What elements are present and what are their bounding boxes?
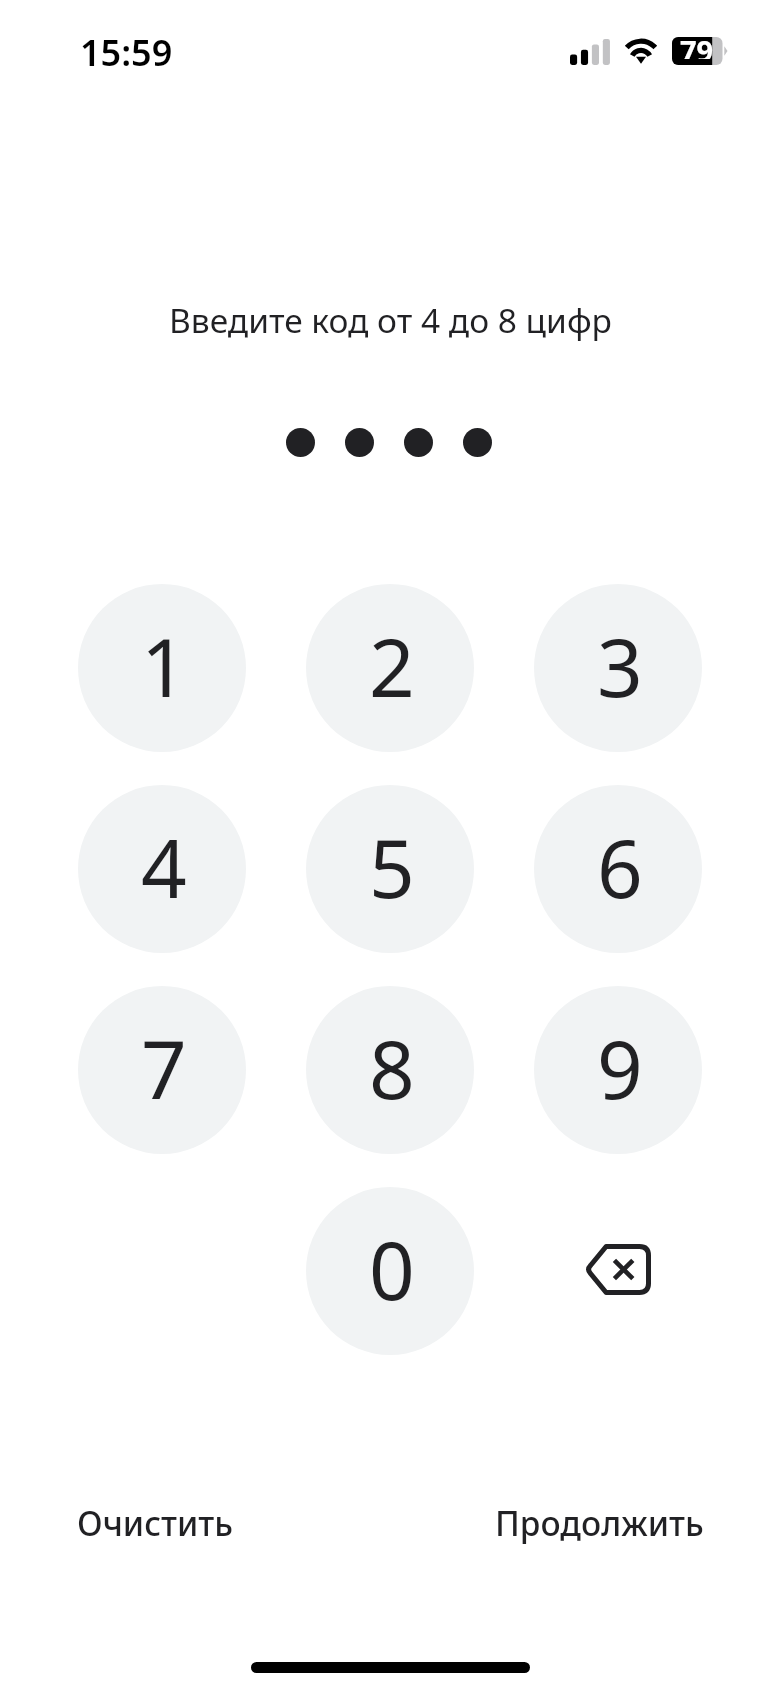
staticText: 3 [597,611,643,720]
button[interactable]: 0 [306,1187,474,1355]
staticText: Очистить [77,1500,234,1546]
staticText: 1 [141,611,187,720]
button[interactable]: 8 [306,986,474,1154]
button[interactable]: Удалить [534,1187,702,1355]
button[interactable]: 4 [78,785,246,953]
button[interactable]: 5 [306,785,474,953]
staticText: 15:59 [80,28,173,77]
button[interactable]: Продолжить [487,1494,712,1552]
staticText: 4 [141,812,187,921]
other: Батарея 79 процентов [672,37,728,65]
other: Сотовая связь [570,39,610,65]
staticText: 2 [369,611,415,720]
staticText: 8 [369,1013,415,1122]
staticText: Введите код от 4 до 8 цифр [169,297,612,343]
button[interactable]: 1 [78,584,246,752]
button[interactable]: 7 [78,986,246,1154]
staticText: 0 [369,1214,415,1323]
staticText: 79 [680,31,714,59]
button[interactable]: 3 [534,584,702,752]
staticText: 7 [141,1013,187,1122]
staticText: 6 [597,812,643,921]
button[interactable]: 2 [306,584,474,752]
button[interactable]: Очистить [69,1494,242,1552]
staticText: Продолжить [495,1500,704,1546]
staticText: 5 [369,812,415,921]
other: Wi-Fi [624,38,658,64]
button[interactable]: 6 [534,785,702,953]
staticText: 9 [597,1013,643,1122]
button[interactable]: 9 [534,986,702,1154]
